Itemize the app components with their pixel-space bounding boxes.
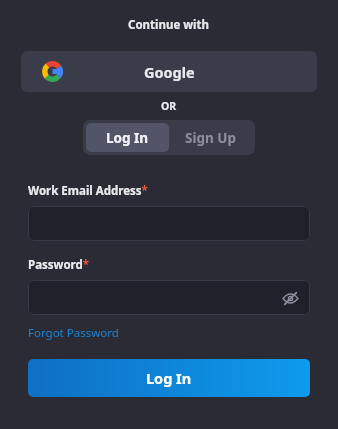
- staticText: Log In: [106, 129, 149, 147]
- button[interactable]: Log In: [28, 359, 310, 397]
- staticText: Forgot Password: [28, 325, 119, 341]
- staticText: Password*: [28, 257, 90, 273]
- staticText: Google: [144, 62, 195, 82]
- staticText: Sign Up: [185, 129, 237, 147]
- staticText: Log In: [146, 368, 192, 388]
- button[interactable]: Forgot Password: [28, 325, 119, 341]
- button[interactable]: Show password: [28, 280, 310, 315]
- button[interactable]: [28, 206, 310, 241]
- button[interactable]: Show password: [280, 288, 300, 308]
- staticText: Continue with: [128, 17, 210, 33]
- button[interactable]: Google: [21, 51, 317, 92]
- button[interactable]: Sign Up: [169, 123, 252, 152]
- staticText: OR: [161, 99, 177, 113]
- staticText: Work Email Address*: [28, 183, 148, 199]
- button[interactable]: Log In: [86, 123, 169, 152]
